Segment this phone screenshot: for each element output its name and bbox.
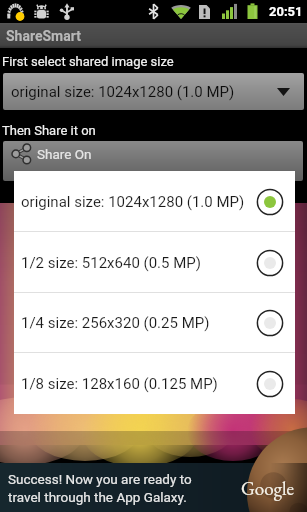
staticText: Then Share it on [2, 123, 96, 138]
staticText: 1/4 size: 256x320 (0.25 MP) [21, 314, 210, 332]
staticText: Success! Now you are ready to [8, 471, 192, 487]
button[interactable]: Share On [3, 141, 303, 181]
button[interactable]: 1/2 size: 512x640 (0.5 MP) [14, 232, 295, 293]
staticText: original size: 1024x1280 (1.0 MP) [21, 193, 245, 211]
staticText: travel through the App Galaxy. [8, 489, 187, 505]
staticText: 1/8 size: 128x160 (0.125 MP) [21, 375, 218, 393]
staticText: Share On [37, 146, 92, 162]
staticText: original size: 1024x1280 (1.0 MP) [11, 83, 235, 101]
staticText: First select shared image size [2, 54, 174, 69]
staticText: 1/2 size: 512x640 (0.5 MP) [21, 254, 201, 272]
button[interactable]: original size: 1024x1280 (1.0 MP) [3, 73, 304, 110]
staticText: Google [241, 476, 294, 501]
button[interactable]: 1/8 size: 128x160 (0.125 MP) [14, 353, 295, 414]
staticText: 20:51 [269, 4, 303, 19]
button[interactable]: original size: 1024x1280 (1.0 MP) [14, 171, 295, 232]
staticText: ShareSmart [6, 28, 81, 44]
button[interactable]: 1/4 size: 256x320 (0.25 MP) [14, 292, 295, 353]
button[interactable]: Success! Now you are ready to [0, 463, 307, 512]
